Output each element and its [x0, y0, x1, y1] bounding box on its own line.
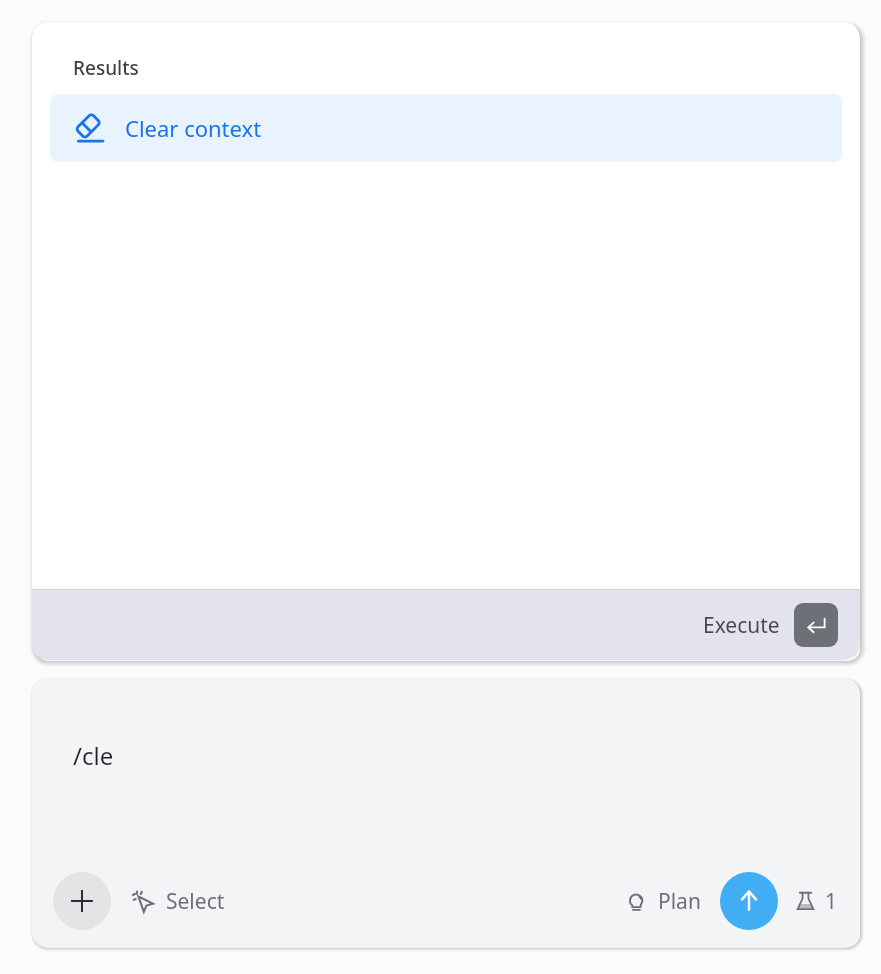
- button[interactable]: Clear context: [50, 94, 842, 162]
- staticText: Execute: [703, 611, 780, 640]
- button[interactable]: Add: [53, 872, 111, 930]
- button[interactable]: Select: [130, 887, 225, 916]
- button[interactable]: Send: [720, 872, 778, 930]
- button[interactable]: 1: [793, 887, 838, 916]
- button[interactable]: Plan: [624, 887, 701, 916]
- staticText: Select: [166, 887, 225, 916]
- staticText: Clear context: [125, 113, 262, 143]
- staticText: /cle: [73, 739, 114, 772]
- button[interactable]: Execute: [703, 603, 860, 647]
- staticText: 1: [825, 887, 838, 916]
- staticText: Results: [73, 55, 139, 81]
- staticText: Plan: [658, 887, 701, 916]
